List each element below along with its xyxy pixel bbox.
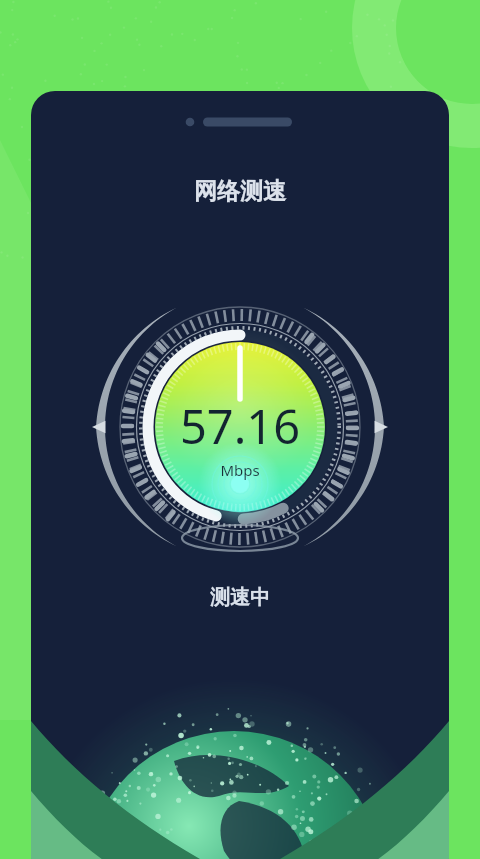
button[interactable]: 网络测速 [31, 177, 449, 859]
staticText: 57.16 [31, 394, 449, 859]
staticText: 测速中 [31, 585, 449, 859]
staticText: 网络测速 [31, 177, 449, 859]
staticText: Mbps [31, 460, 449, 859]
